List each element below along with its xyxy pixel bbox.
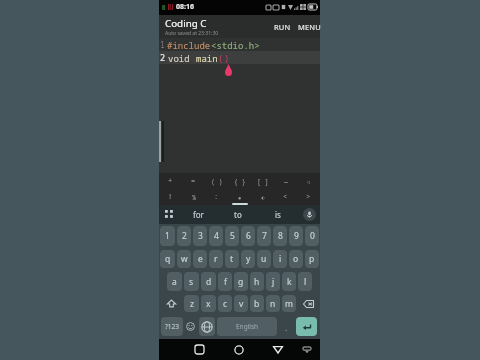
staticText: MENU <box>298 22 321 32</box>
staticText: o <box>293 253 299 265</box>
button[interactable]: 8 <box>273 226 287 246</box>
button[interactable]: 2 <box>177 226 191 246</box>
staticText: l <box>304 276 307 288</box>
button[interactable]: t <box>225 250 239 268</box>
button[interactable]: 4 <box>209 226 223 246</box>
staticText: <stdio.h> <box>211 39 260 51</box>
staticText: 6 <box>246 230 251 242</box>
button[interactable]: Emoji <box>183 314 198 339</box>
button[interactable]: for <box>179 205 218 224</box>
staticText: English <box>236 322 259 331</box>
staticText: [ ] <box>257 177 269 186</box>
button[interactable]: 1 <box>160 226 175 246</box>
button[interactable]: r <box>209 250 223 268</box>
button[interactable]: 0 <box>305 226 319 246</box>
button[interactable]: > <box>297 189 320 205</box>
button[interactable]: Home <box>225 339 253 360</box>
staticText: 3 <box>198 230 203 242</box>
button[interactable]: o <box>289 250 303 268</box>
button[interactable]: f <box>218 272 232 291</box>
button[interactable]: 5 <box>225 226 239 246</box>
button[interactable]: — <box>274 173 297 189</box>
button[interactable]: Hide keyboard <box>293 339 321 360</box>
staticText: ( ) <box>211 177 223 186</box>
staticText: q <box>165 253 171 265</box>
button[interactable]: z <box>184 295 199 312</box>
button[interactable]: < <box>274 189 297 205</box>
button[interactable]: n <box>266 295 280 312</box>
staticText: void <box>168 52 196 64</box>
staticText: e <box>198 253 203 265</box>
button[interactable]: Change language <box>199 317 215 336</box>
staticText: b <box>254 298 260 310</box>
staticText: 08:16 <box>176 2 194 12</box>
button[interactable]: is <box>258 205 298 224</box>
button[interactable]: v <box>234 295 248 312</box>
button[interactable]: ● <box>228 189 251 205</box>
button[interactable]: { } <box>228 173 251 189</box>
staticText: h <box>254 276 260 288</box>
button[interactable]: i <box>273 250 287 268</box>
button[interactable]: + <box>159 173 182 189</box>
button[interactable]: h <box>250 272 264 291</box>
staticText: ) <box>224 52 230 64</box>
button[interactable]: 7 <box>257 226 271 246</box>
staticText: ● <box>238 194 242 201</box>
button[interactable]: ! <box>159 189 182 205</box>
button[interactable]: RUN <box>271 18 294 36</box>
button[interactable]: k <box>282 272 296 291</box>
staticText: — <box>284 177 288 186</box>
staticText: 5 <box>230 230 235 242</box>
button[interactable]: e <box>193 250 207 268</box>
staticText: 2 <box>182 230 187 242</box>
button[interactable]: 6 <box>241 226 255 246</box>
button[interactable]: = <box>182 173 205 189</box>
button[interactable]: m <box>282 295 296 312</box>
button[interactable]: Recents <box>185 339 213 360</box>
staticText: ◁ <box>305 178 312 185</box>
button[interactable]: x <box>201 295 216 312</box>
staticText: s <box>189 276 194 288</box>
button[interactable]: s <box>184 272 199 291</box>
button[interactable]: b <box>250 295 264 312</box>
button[interactable]: Period <box>279 314 293 339</box>
button[interactable]: Voice input <box>298 205 320 224</box>
button[interactable]: 3 <box>193 226 207 246</box>
button[interactable]: % <box>182 189 205 205</box>
staticText: 0 <box>310 230 315 242</box>
button[interactable]: 9 <box>289 226 303 246</box>
staticText: t <box>230 253 234 265</box>
button[interactable]: Back <box>264 339 292 360</box>
button[interactable]: ?123 <box>161 317 183 336</box>
button[interactable]: g <box>234 272 248 291</box>
button[interactable]: ( ) <box>205 173 228 189</box>
button[interactable]: Shift <box>159 293 183 314</box>
button[interactable]: p <box>305 250 319 268</box>
button[interactable]: y <box>241 250 255 268</box>
button[interactable]: Backspace <box>297 293 320 314</box>
staticText: 1 <box>160 39 165 50</box>
button[interactable]: Enter <box>296 317 317 336</box>
button[interactable]: Clipboard <box>159 205 179 224</box>
staticText: g <box>238 276 244 288</box>
button[interactable]: u <box>257 250 271 268</box>
button[interactable]: l <box>298 272 312 291</box>
button[interactable]: Space <box>217 317 277 336</box>
button[interactable]: [ ] <box>251 173 274 189</box>
button[interactable]: a <box>167 272 182 291</box>
button[interactable]: to <box>218 205 258 224</box>
button[interactable]: j <box>266 272 280 291</box>
button[interactable]: d <box>201 272 216 291</box>
button[interactable]: w <box>177 250 191 268</box>
staticText: d <box>206 276 212 288</box>
button[interactable]: c <box>218 295 232 312</box>
button[interactable]: ◁ <box>297 173 320 189</box>
staticText: 1 <box>165 230 170 242</box>
button[interactable]: : <box>205 189 228 205</box>
button[interactable]: MENU <box>295 18 324 36</box>
button[interactable]: ◐ <box>251 189 274 205</box>
staticText: 8 <box>278 230 283 242</box>
button[interactable]: q <box>160 250 175 268</box>
staticText: x <box>206 298 211 310</box>
staticText: u <box>261 253 267 265</box>
